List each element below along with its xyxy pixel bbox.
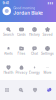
button[interactable]: Saved	[41, 26, 54, 38]
staticText: Energy	[29, 71, 40, 75]
button[interactable]: Cards	[15, 26, 28, 38]
button[interactable]: Alerts	[2, 45, 15, 57]
staticText: Good morning	[13, 6, 35, 10]
button[interactable]: Files	[15, 45, 28, 57]
staticText: Chat	[31, 52, 38, 56]
button[interactable]: More	[41, 64, 54, 76]
button[interactable]: Energy	[28, 64, 41, 76]
staticText: Saved	[42, 33, 52, 37]
staticText: History	[29, 33, 40, 37]
staticText: Privacy	[15, 71, 27, 75]
button[interactable]: Search	[2, 26, 15, 38]
button[interactable]: Health	[2, 64, 15, 76]
button[interactable]: Profile	[42, 88, 56, 92]
staticText: ▮▮▮	[47, 1, 53, 5]
button[interactable]: Chat	[28, 45, 41, 57]
staticText: Jordan Blake	[13, 10, 43, 16]
staticText: Settings	[41, 52, 54, 56]
button[interactable]: Home	[0, 88, 14, 92]
staticText: Health	[3, 71, 13, 75]
staticText: Alerts	[4, 52, 13, 56]
staticText: Cards	[17, 33, 26, 37]
staticText: Files	[17, 52, 25, 56]
button[interactable]: Settings	[41, 45, 54, 57]
button[interactable]: Favorites	[28, 88, 42, 92]
button[interactable]: Privacy	[15, 64, 28, 76]
staticText: Search	[3, 33, 14, 37]
staticText: More	[43, 71, 51, 75]
staticText: 9:41	[2, 1, 8, 5]
button[interactable]: History	[28, 26, 41, 38]
button[interactable]: Search	[14, 88, 28, 92]
